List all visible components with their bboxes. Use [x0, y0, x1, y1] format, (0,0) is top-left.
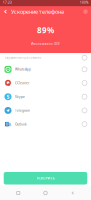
button[interactable]: CCleaner: [0, 76, 91, 90]
staticText: Ускорение телефона: [11, 8, 64, 15]
staticText: 89%: [37, 25, 54, 35]
staticText: 17:23: [3, 1, 12, 5]
button[interactable]: S: [0, 90, 91, 104]
staticText: WhatsApp: [15, 67, 31, 72]
staticText: Telegram: [15, 108, 30, 113]
button[interactable]: Back: [64, 186, 82, 200]
button[interactable]: Back: [0, 6, 11, 17]
staticText: Skype: [15, 95, 25, 99]
button[interactable]: Settings: [80, 6, 91, 17]
staticText: 100%: [80, 1, 88, 5]
button[interactable]: Home: [36, 186, 54, 200]
staticText: S: [6, 93, 9, 100]
button[interactable]: Recents: [9, 186, 27, 200]
staticText: Загруженные приложения: [4, 56, 41, 59]
staticText: Outlook: [15, 122, 27, 126]
button[interactable]: Telegram: [0, 104, 91, 117]
staticText: УСКОРИТЬ: [36, 176, 54, 181]
staticText: CCleaner: [15, 81, 29, 85]
button[interactable]: WhatsApp: [0, 62, 91, 76]
button[interactable]: УСКОРИТЬ: [4, 172, 87, 184]
staticText: Использовано ОЗУ: [31, 42, 60, 46]
staticText: O: [5, 122, 8, 126]
button[interactable]: O: [0, 117, 91, 131]
